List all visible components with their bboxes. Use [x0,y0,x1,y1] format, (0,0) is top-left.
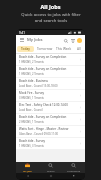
staticText: Bosch tide - Survey [19,139,46,143]
staticText: Load Base - Council [19,108,43,112]
staticText: 1 HMGNS, 2 Tenants [19,60,44,64]
button[interactable]: Menu [19,37,25,43]
button[interactable]: Profile [77,38,82,43]
staticText: Load Base - Council 15:00-18:00 [19,84,58,88]
staticText: All [77,47,81,51]
staticText: Bosch tide - Survey on Completion [19,67,67,71]
staticText: Elec Tent - Safety Check 12:00-14:00 [19,103,68,107]
staticText: Watts Sort - Hinge - Master - Review [19,127,69,131]
button[interactable]: Bosch tide - Survey on Completion [16,54,85,65]
button[interactable]: This Week [55,46,72,52]
button[interactable]: My Jobs [16,162,39,173]
staticText: 1 HMGNS, 3 Tenants [19,144,44,148]
staticText: Bosch tide - Business [19,79,48,83]
staticText: My Jobs [23,169,32,172]
staticText: 1 HMGNS, 2 Tenants [19,72,44,76]
staticText: 3 HMGNS, 1 Tenants [19,96,44,100]
button[interactable]: Filter [69,37,76,44]
button[interactable]: Search [62,37,69,44]
staticText: 9:41 [19,31,25,35]
button[interactable]: Tomorrow [36,46,53,52]
button[interactable]: Bosch tide - Survey [16,138,85,149]
button[interactable]: Elec Tent - Safety Check 12:00-14:00 [16,102,85,113]
button[interactable]: Bosch tide - Survey on Completion [16,66,85,77]
button[interactable]: Recents [62,173,85,179]
button[interactable]: Watts Sort - Hinge - Master - Review [16,126,85,137]
button[interactable]: Today [17,46,34,52]
staticText: Mock Fire - Survey [19,91,45,95]
button[interactable]: Compliance [62,162,85,173]
staticText: Today [21,47,30,51]
staticText: Bosch tide - Survey on Completion [19,55,67,59]
button[interactable]: All [74,46,84,52]
staticText: All Jobs [40,3,61,10]
staticText: Glass Base - Council 09:00-11:00 [19,132,58,136]
staticText: Tomorrow [37,47,53,51]
staticText: Bosch tide - Survey on Completion [19,115,67,119]
button[interactable]: Back [16,173,39,179]
button[interactable]: Bosch tide - Survey on Completion [16,114,85,125]
staticText: Quick access to jobs with filter and sea… [21,12,81,23]
staticText: 2 HMGNS, 1 Tenants [19,120,44,124]
button[interactable]: Search [39,162,62,173]
button[interactable]: Bosch tide - Business [16,78,85,89]
staticText: Compliance [67,169,81,172]
button[interactable]: Mock Fire - Survey [16,90,85,101]
button[interactable]: Home [39,173,62,179]
staticText: My Jobs [27,37,43,43]
staticText: This Week [56,47,72,51]
staticText: Search [47,169,55,172]
